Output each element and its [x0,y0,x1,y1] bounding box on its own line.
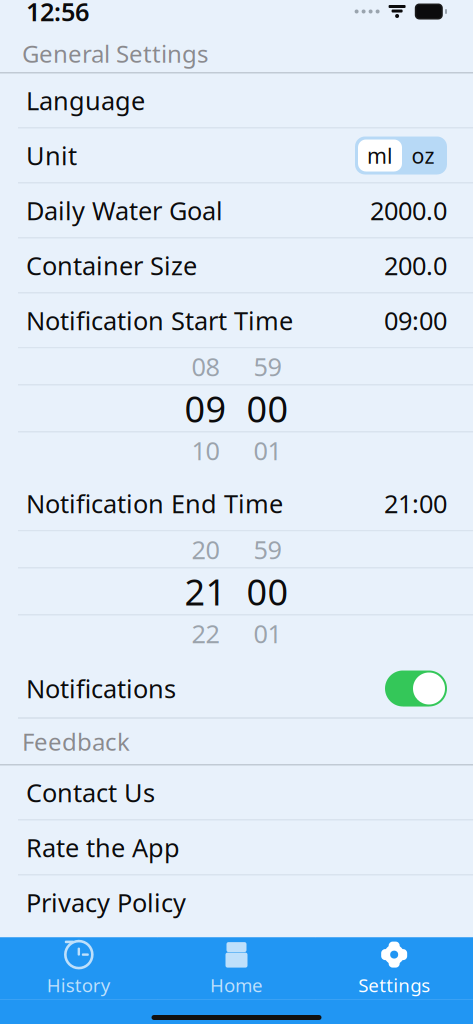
button[interactable]: Contact Us [0,765,473,819]
button[interactable]: History [0,937,158,999]
button[interactable]: Container Size [0,238,473,292]
staticText: 00 [246,385,288,432]
staticText: Feedback [22,726,130,757]
staticText: General Settings [22,38,208,69]
staticText: Notification End Time [26,487,283,520]
staticText: Home [210,973,263,997]
staticText: History [47,973,111,997]
button[interactable]: Notification Start Time [0,293,473,347]
button[interactable]: Language [0,73,473,127]
staticText: oz [411,141,434,170]
staticText: Privacy Policy [26,886,186,919]
staticText: 12:56 [26,0,89,28]
button[interactable]: Notification End Time [0,476,473,530]
staticText: Language [26,84,145,117]
staticText: 00 [246,568,288,615]
staticText: 21 [184,568,226,615]
staticText: 20 [191,533,219,566]
staticText: 22 [191,617,219,650]
staticText: Rate the App [26,831,180,864]
staticText: Notification Start Time [26,304,293,337]
staticText: Unit [26,139,77,172]
staticText: Container Size [26,249,197,282]
button[interactable]: Daily Water Goal [0,183,473,237]
button[interactable]: Rate the App [0,820,473,874]
staticText: 59 [253,350,281,383]
staticText: Settings [358,973,430,997]
staticText: Daily Water Goal [26,194,223,227]
staticText: 08 [191,350,219,383]
staticText: Contact Us [26,776,155,809]
button[interactable]: Unit [0,128,473,182]
button[interactable]: Home [158,937,315,999]
staticText: ml [367,141,393,170]
staticText: 09:00 [384,304,447,337]
staticText: 09 [184,385,226,432]
staticText: 01 [253,434,281,467]
staticText: 21:00 [384,487,447,520]
staticText: 59 [253,533,281,566]
staticText: 200.0 [384,249,447,282]
staticText: Notifications [26,672,176,705]
button[interactable]: Notifications [0,659,473,717]
button[interactable]: Privacy Policy [0,875,473,929]
button[interactable]: ml [355,136,447,174]
button[interactable]: Settings [315,937,473,999]
staticText: 01 [253,617,281,650]
staticText: 10 [191,434,219,467]
staticText: 2000.0 [370,194,447,227]
